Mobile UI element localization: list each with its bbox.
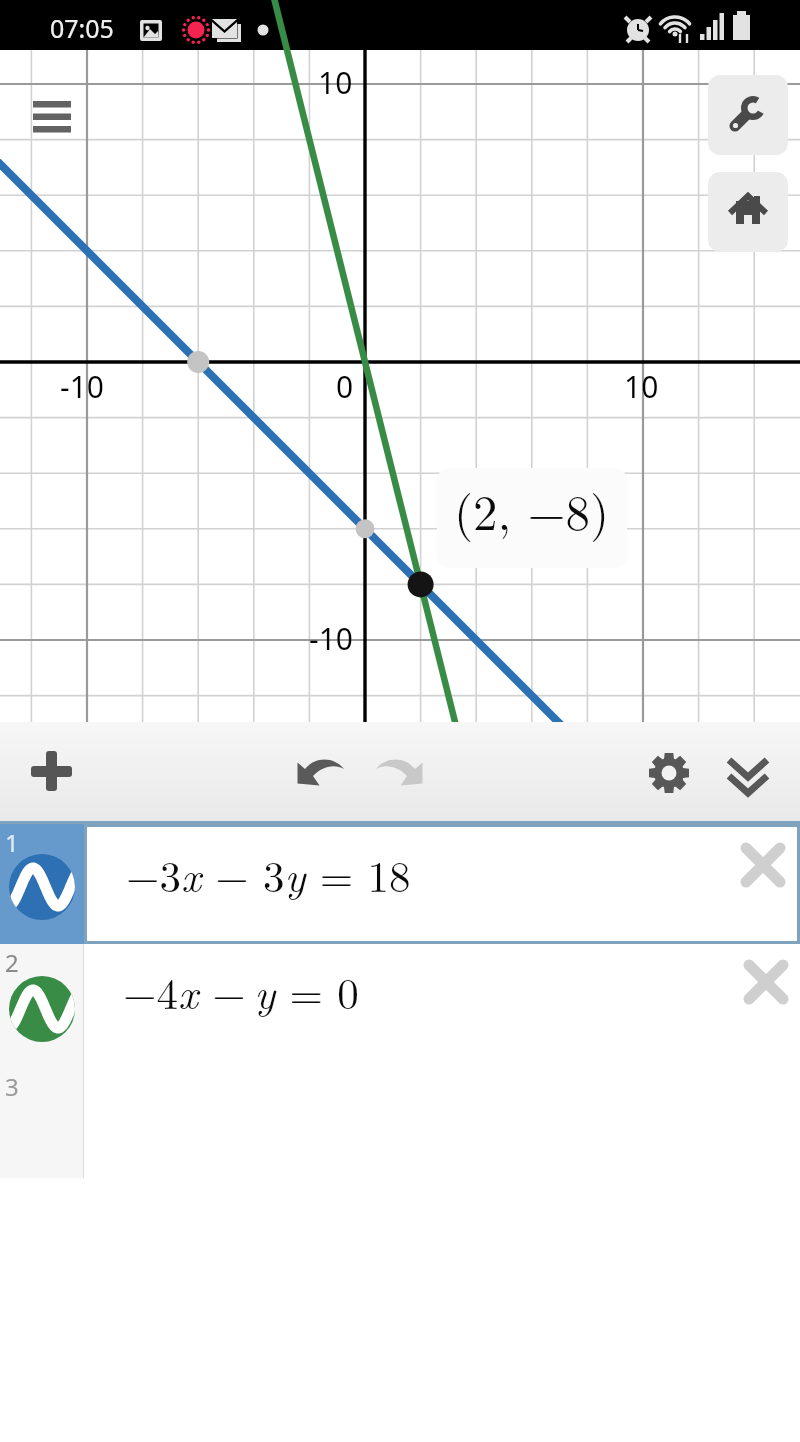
staticText: -10	[309, 618, 353, 659]
button[interactable]: 2	[0, 944, 800, 1068]
button[interactable]: Home	[708, 172, 788, 252]
button[interactable]: 3	[0, 1068, 800, 1178]
staticText: 10	[624, 366, 659, 407]
button[interactable]: Delete	[734, 836, 792, 894]
staticText: 2	[5, 946, 19, 979]
staticText: 10	[318, 62, 353, 103]
button[interactable]: Redo	[370, 743, 430, 803]
button[interactable]: Collapse	[718, 743, 778, 803]
button[interactable]: Tools	[708, 75, 788, 155]
staticText: 3	[5, 1070, 19, 1103]
staticText: −3x − 3y = 18	[126, 844, 411, 905]
staticText: 0	[336, 366, 354, 407]
button[interactable]: Settings	[639, 743, 699, 803]
staticText: −4x − y = 0	[123, 961, 359, 1022]
button[interactable]: Undo	[290, 743, 350, 803]
staticText: (2, −8)	[454, 475, 610, 544]
button[interactable]: Add	[21, 741, 81, 801]
staticText: -10	[60, 366, 104, 407]
staticText: 1	[5, 826, 19, 859]
staticText: 07:05	[50, 11, 114, 45]
button[interactable]: Delete	[737, 953, 795, 1011]
button[interactable]: 1	[0, 824, 800, 944]
button[interactable]: Menu	[22, 88, 86, 152]
